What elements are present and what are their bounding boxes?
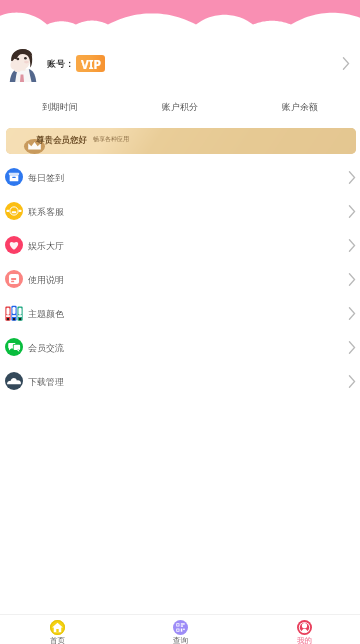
staticText: 主题颜色 — [28, 308, 64, 319]
staticText: 每日签到 — [28, 172, 64, 183]
staticText: 首页 — [50, 636, 65, 644]
button[interactable]: 账号： — [0, 40, 360, 86]
button[interactable]: Account details — [336, 53, 356, 73]
button[interactable]: VIP — [76, 55, 105, 72]
staticText: 会员交流 — [28, 342, 64, 353]
button[interactable]: 首页 — [0, 615, 120, 644]
staticText: 畅享各种应用 — [93, 135, 129, 143]
button[interactable]: 账户积分 — [120, 96, 240, 116]
button[interactable]: 联系客服 — [0, 194, 360, 228]
staticText: 账户余额 — [282, 101, 318, 112]
button[interactable]: 娱乐大厅 — [0, 228, 360, 262]
button[interactable]: 尊贵会员您好 — [6, 128, 356, 154]
staticText: 账号： — [47, 58, 74, 69]
button[interactable]: 账户余额 — [240, 96, 360, 116]
button[interactable]: 使用说明 — [0, 262, 360, 296]
staticText: 账户积分 — [162, 101, 198, 112]
staticText: VIP — [81, 56, 101, 72]
staticText: 我的 — [297, 636, 312, 644]
staticText: 下载管理 — [28, 376, 64, 387]
button[interactable]: 查询 — [120, 615, 240, 644]
staticText: 尊贵会员您好 — [36, 135, 87, 146]
button[interactable]: 到期时间 — [0, 96, 120, 116]
staticText: 查询 — [173, 636, 188, 644]
staticText: 到期时间 — [42, 101, 78, 112]
staticText: 联系客服 — [28, 206, 64, 217]
button[interactable]: 我的 — [240, 615, 360, 644]
button[interactable]: 下载管理 — [0, 364, 360, 398]
button[interactable]: 主题颜色 — [0, 296, 360, 330]
button[interactable]: 每日签到 — [0, 160, 360, 194]
staticText: 娱乐大厅 — [28, 240, 64, 251]
button[interactable]: 会员交流 — [0, 330, 360, 364]
staticText: 使用说明 — [28, 274, 64, 285]
